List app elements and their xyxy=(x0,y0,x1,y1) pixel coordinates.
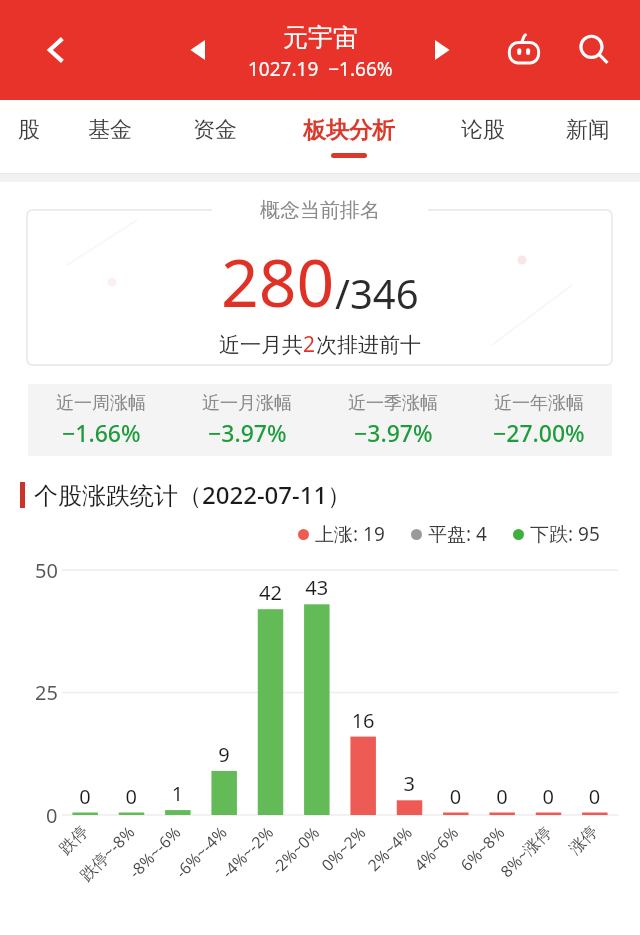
staticText: 近一季涨幅 xyxy=(348,392,438,415)
button[interactable]: Next xyxy=(420,28,464,72)
staticText: /346 xyxy=(335,266,419,320)
staticText: 280 xyxy=(221,236,335,326)
staticText: 近一年涨幅 xyxy=(494,392,584,415)
staticText: −1.66% xyxy=(62,417,141,448)
staticText: 近一月涨幅 xyxy=(202,392,292,415)
staticText: 上涨: 19 xyxy=(315,521,385,547)
staticText: −27.00% xyxy=(493,417,585,448)
staticText: 股 xyxy=(18,116,40,144)
staticText: 论股 xyxy=(461,116,505,144)
staticText: 概念当前排名 xyxy=(260,198,380,223)
staticText: 下跌: 95 xyxy=(530,521,600,547)
button[interactable]: AI assistant xyxy=(500,26,548,74)
staticText: 近一周涨幅 xyxy=(56,392,146,415)
button[interactable]: Previous xyxy=(176,28,220,72)
staticText: 新闻 xyxy=(566,116,610,144)
staticText: 资金 xyxy=(193,116,237,144)
button[interactable]: 板块分析 xyxy=(267,100,430,174)
button[interactable]: 论股 xyxy=(430,100,535,174)
staticText: −3.97% xyxy=(354,417,433,448)
button[interactable]: 资金 xyxy=(162,100,267,174)
button[interactable]: Back xyxy=(34,27,80,73)
staticText: 平盘: 4 xyxy=(428,521,487,547)
staticText: 基金 xyxy=(88,116,132,144)
button[interactable]: 基金 xyxy=(57,100,162,174)
button[interactable]: 股 xyxy=(0,100,57,174)
staticText: 个股涨跌统计（2022-07-11） xyxy=(34,478,352,511)
staticText: 1027.19 −1.66% xyxy=(248,56,393,82)
button[interactable]: 个股涨跌统计（2022-07-11） xyxy=(20,478,640,511)
staticText: 次排进前十 xyxy=(316,332,421,358)
staticText: 元宇宙 xyxy=(283,22,358,53)
staticText: 2 xyxy=(303,330,316,359)
staticText: −3.97% xyxy=(208,417,287,448)
staticText: 板块分析 xyxy=(303,116,395,145)
button[interactable]: Search xyxy=(570,26,618,74)
staticText: 近一月共 xyxy=(219,332,303,358)
button[interactable]: 新闻 xyxy=(535,100,640,174)
